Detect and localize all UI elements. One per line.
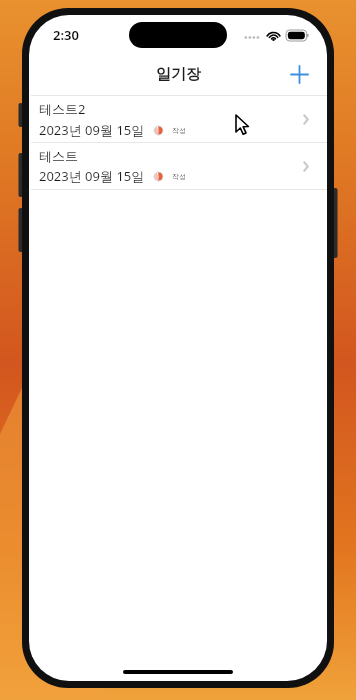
button[interactable]: 테스트2 xyxy=(29,96,327,142)
staticText: 2023년 09월 15일 xyxy=(39,167,145,185)
staticText: 작성 xyxy=(172,126,186,135)
staticText: 2023년 09월 15일 xyxy=(39,121,145,139)
staticText: 테스트2 xyxy=(39,100,86,118)
staticText: 테스트 xyxy=(39,148,78,164)
staticText: 작성 xyxy=(172,172,186,181)
staticText: 2:30 xyxy=(53,26,79,44)
staticText: 일기장 xyxy=(156,65,201,84)
button[interactable]: 테스트 xyxy=(29,143,327,189)
button[interactable]: Add diary entry xyxy=(279,54,319,94)
